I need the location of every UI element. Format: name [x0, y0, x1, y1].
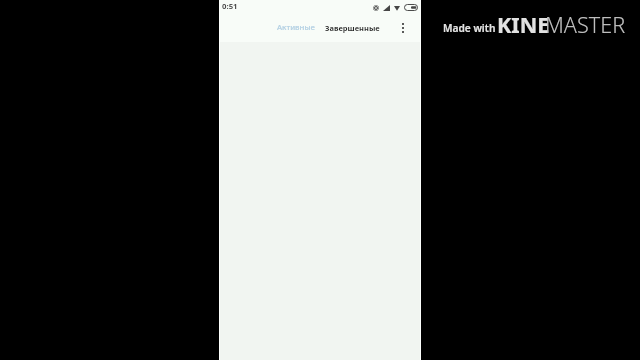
other: Alarm set [373, 5, 379, 11]
other: Mobile signal [383, 5, 390, 11]
staticText: 0:51 [222, 1, 238, 12]
button[interactable]: Завершенные [321, 14, 384, 41]
staticText: Made with [443, 21, 496, 35]
other: Battery [404, 4, 418, 11]
staticText: MASTER [545, 10, 626, 39]
button[interactable]: Активные [273, 14, 319, 41]
staticText: Активные [277, 22, 315, 33]
staticText: KINE [497, 10, 550, 39]
button[interactable]: More options [393, 18, 413, 38]
staticText: Завершенные [325, 23, 380, 33]
other: Wi-Fi [394, 5, 400, 11]
